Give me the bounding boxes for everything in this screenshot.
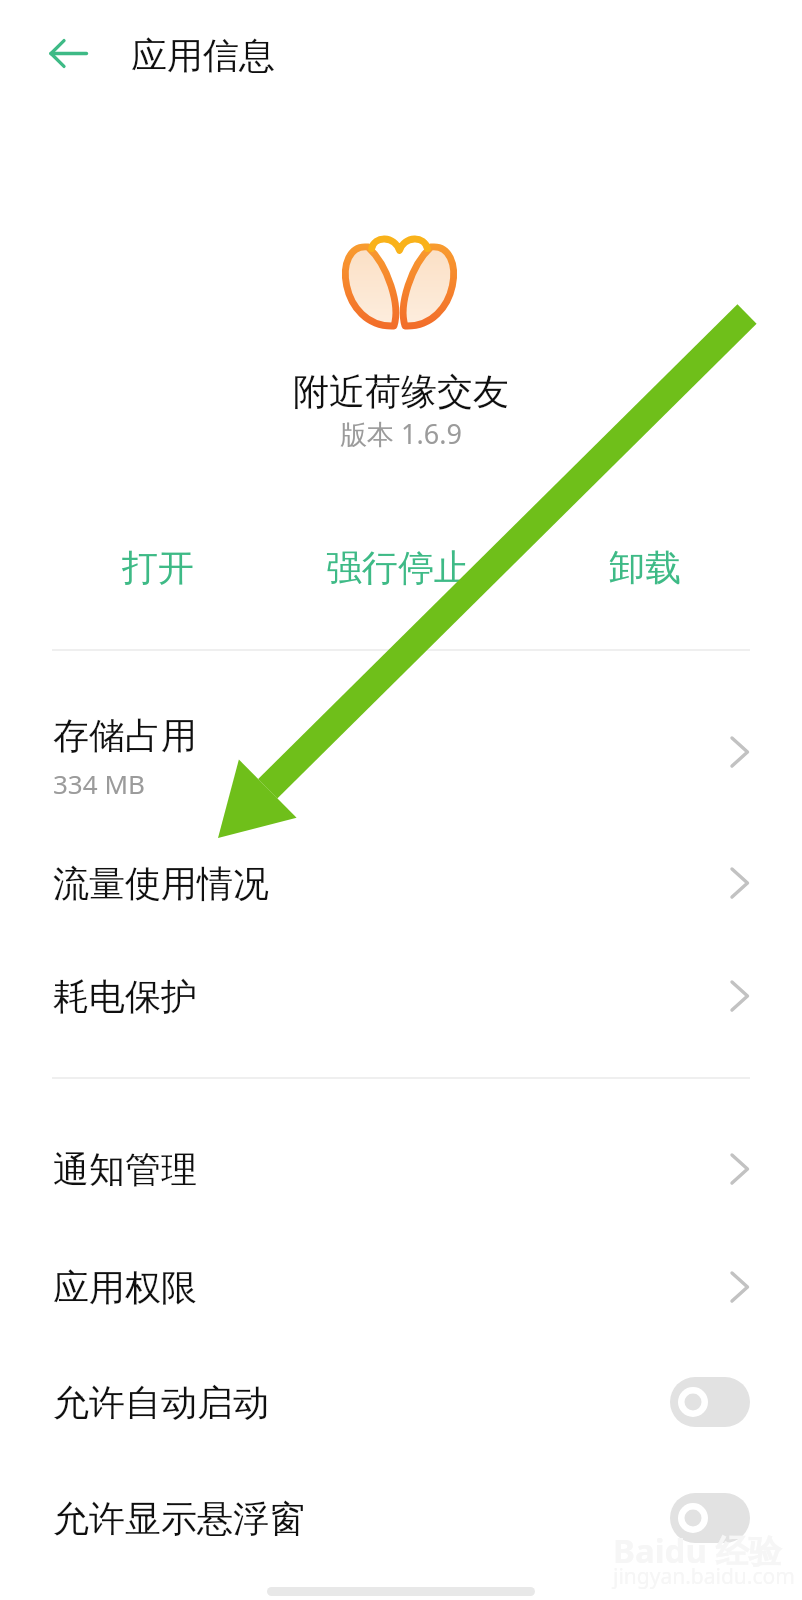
- staticText: 允许显示悬浮窗: [53, 1496, 670, 1541]
- button[interactable]: Back: [20, 20, 118, 88]
- staticText: 打开: [122, 545, 194, 590]
- staticText: 334 MB: [53, 766, 145, 801]
- staticText: 应用权限: [53, 1265, 197, 1310]
- staticText: 流量使用情况: [53, 861, 269, 906]
- button[interactable]: 强行停止: [288, 520, 508, 614]
- button[interactable]: 通知管理: [0, 1113, 802, 1225]
- staticText: 耗电保护: [53, 974, 197, 1019]
- staticText: jingyan.baidu.com: [613, 1562, 795, 1591]
- button[interactable]: 耗电保护: [0, 940, 802, 1052]
- button[interactable]: 流量使用情况: [0, 827, 802, 939]
- staticText: 应用信息: [131, 33, 275, 78]
- button[interactable]: 存储占用: [0, 688, 802, 826]
- button[interactable]: 允许自动启动: [0, 1346, 802, 1458]
- staticText: 通知管理: [53, 1147, 197, 1192]
- staticText: 附近荷缘交友: [293, 369, 509, 414]
- staticText: 版本 1.6.9: [340, 415, 462, 452]
- button[interactable]: 卸载: [535, 520, 755, 614]
- button[interactable]: 打开: [48, 520, 268, 614]
- button[interactable]: 允许显示悬浮窗: [0, 1462, 802, 1574]
- staticText: 强行停止: [326, 545, 470, 590]
- staticText: 存储占用: [53, 713, 197, 758]
- staticText: Baidu 经验: [613, 1528, 782, 1573]
- staticText: 卸载: [609, 545, 681, 590]
- staticText: 允许自动启动: [53, 1380, 670, 1425]
- button[interactable]: 应用权限: [0, 1231, 802, 1343]
